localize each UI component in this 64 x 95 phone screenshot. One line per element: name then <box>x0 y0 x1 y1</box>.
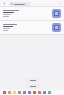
button[interactable]: Search <box>9 2 31 6</box>
button[interactable]: Colour swatch <box>38 91 41 94</box>
button[interactable]: Colour swatch <box>33 91 36 94</box>
button[interactable]: Colour swatch <box>13 91 16 94</box>
button[interactable]: Colour swatch <box>18 91 21 94</box>
button[interactable]: Open media <box>52 9 61 18</box>
button[interactable]: Colour swatch <box>23 91 26 94</box>
button[interactable]: Colour swatch <box>28 91 31 94</box>
button[interactable]: Colour swatch <box>48 91 51 94</box>
button[interactable]: More options <box>57 1 62 6</box>
button[interactable]: Open media <box>52 23 61 32</box>
button[interactable]: Open media <box>0 7 64 20</box>
button[interactable]: Colour swatch <box>43 91 46 94</box>
button[interactable]: Open media <box>0 21 64 34</box>
button[interactable]: Action <box>25 78 40 82</box>
button[interactable]: Action <box>25 84 40 88</box>
button[interactable]: Back <box>2 1 7 6</box>
button[interactable]: Colour swatch <box>8 91 11 94</box>
button[interactable]: Colour swatch <box>3 91 6 94</box>
